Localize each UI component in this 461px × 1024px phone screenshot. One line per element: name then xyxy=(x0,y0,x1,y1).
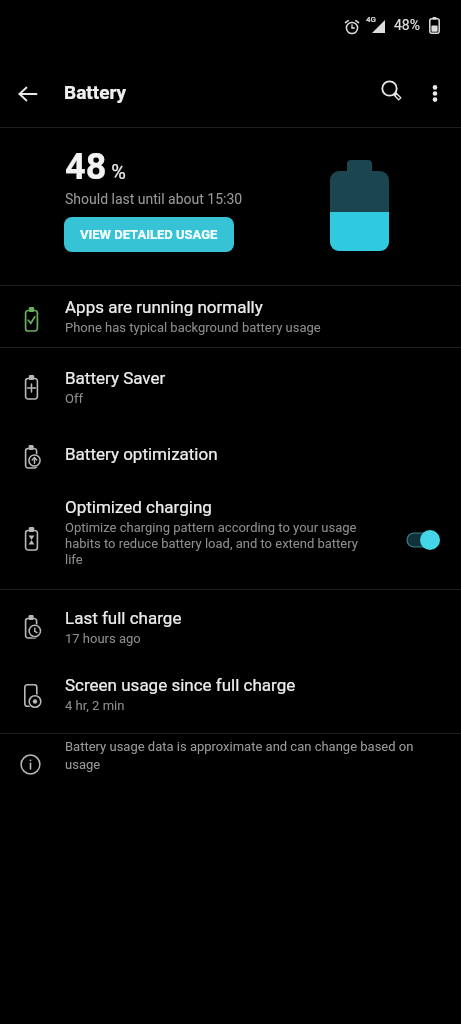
staticText: Screen usage since full charge xyxy=(65,675,296,695)
button[interactable]: Optimized charging xyxy=(0,490,461,589)
button[interactable]: Battery Saver xyxy=(0,348,461,424)
staticText: Phone has typical background battery usa… xyxy=(65,320,321,335)
staticText: Battery Saver xyxy=(65,368,166,388)
staticText: Battery usage data is approximate and ca… xyxy=(65,739,414,772)
staticText: Optimize charging pattern according to y… xyxy=(65,520,358,567)
staticText: 4 hr, 2 min xyxy=(65,698,125,713)
button[interactable] xyxy=(415,73,455,113)
staticText: Apps are running normally xyxy=(65,297,263,317)
button[interactable]: Last full charge xyxy=(0,590,461,660)
staticText: Battery xyxy=(64,81,127,103)
staticText: 48% xyxy=(394,17,420,33)
staticText: 48 % xyxy=(65,146,126,188)
staticText: Should last until about 15:30 xyxy=(65,191,243,207)
button[interactable]: VIEW DETAILED USAGE xyxy=(64,217,234,252)
staticText: Battery optimization xyxy=(65,444,218,464)
staticText: Off xyxy=(65,391,83,406)
button[interactable]: Screen usage since full charge xyxy=(0,660,461,733)
staticText: Optimized charging xyxy=(65,497,212,517)
button[interactable]: Battery optimization xyxy=(0,424,461,490)
button[interactable] xyxy=(404,526,446,554)
button[interactable] xyxy=(8,74,48,114)
staticText: 17 hours ago xyxy=(65,631,141,646)
button[interactable]: Apps are running normally xyxy=(0,286,461,347)
button[interactable] xyxy=(372,71,412,111)
staticText: VIEW DETAILED USAGE xyxy=(80,227,218,242)
staticText: 4G xyxy=(366,15,376,24)
staticText: Last full charge xyxy=(65,608,182,628)
